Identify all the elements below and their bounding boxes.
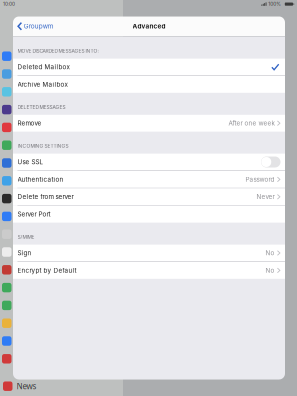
staticText: Use SSL	[17, 158, 43, 166]
staticText: Remove	[17, 119, 41, 127]
staticText: Archive Mailbox	[17, 81, 67, 88]
staticText: S/MIME	[17, 234, 34, 240]
button[interactable]: Sign	[13, 245, 285, 261]
staticText: Authentication	[17, 176, 63, 183]
staticText: Never	[256, 193, 274, 201]
button[interactable]: Authentication	[13, 171, 285, 188]
staticText: Password	[245, 176, 274, 183]
button[interactable]: Delete from server	[13, 188, 285, 205]
staticText: Delete from server	[17, 193, 73, 201]
staticText: Encrypt by Default	[17, 267, 76, 274]
button[interactable]: Archive Mailbox	[13, 76, 285, 93]
button[interactable]: Server Port	[13, 206, 285, 223]
staticText: No	[265, 267, 274, 274]
staticText: Groupwm	[24, 22, 54, 30]
staticText: Advanced	[132, 22, 165, 30]
staticText: Server Port	[17, 210, 50, 218]
staticText: MOVE DISCARDED MESSAGES INTO:	[17, 48, 98, 54]
button[interactable]: Use SSL	[13, 154, 285, 170]
staticText: Sign	[17, 249, 31, 257]
staticText: After one week	[228, 119, 274, 127]
staticText: No	[265, 249, 274, 257]
button[interactable]: Encrypt by Default	[13, 262, 285, 279]
staticText: Deleted Mailbox	[17, 63, 69, 71]
staticText: DELETED MESSAGES	[17, 104, 65, 110]
staticText: INCOMING SETTINGS	[17, 143, 68, 149]
staticText: 100%	[268, 1, 281, 7]
button[interactable]: Groupwm	[13, 16, 54, 36]
button[interactable]: Remove	[13, 115, 285, 132]
button[interactable]: Deleted Mailbox	[13, 59, 285, 75]
staticText: 10:00	[3, 1, 15, 7]
staticText: News	[16, 381, 36, 391]
